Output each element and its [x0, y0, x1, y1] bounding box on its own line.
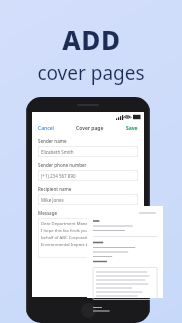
button[interactable]: (+1) 234 567 890: [38, 170, 138, 181]
staticText: Recipient name: [38, 186, 72, 192]
staticText: I hope this fax finds you well. I am wri…: [41, 228, 130, 234]
staticText: Mike Jones: [41, 197, 64, 203]
staticText: Cover page: [76, 125, 104, 132]
button[interactable]: Cover page preview: [87, 206, 163, 298]
staticText: ADD: [62, 22, 121, 57]
button[interactable]: Save: [125, 125, 139, 132]
staticText: cover pages: [37, 60, 145, 86]
staticText: Sender name: [38, 138, 67, 144]
button[interactable]: Dear Department Manager,: [38, 218, 138, 258]
staticText: Save: [126, 125, 138, 132]
button[interactable]: Mike Jones: [38, 194, 138, 205]
staticText: Environmental Impact Assessment report.: [41, 242, 124, 248]
staticText: (+1) 234 567 890: [41, 173, 76, 179]
staticText: Cancel: [38, 125, 54, 132]
staticText: Message: [38, 210, 58, 216]
button[interactable]: Cancel: [37, 125, 55, 132]
staticText: Dear Department Manager,: [41, 221, 95, 227]
staticText: Elizabeth Smith: [41, 149, 74, 155]
staticText: behalf of ABC Corporation regarding the: [41, 235, 121, 241]
staticText: Sender phone number: [38, 162, 87, 168]
button[interactable]: Elizabeth Smith: [38, 146, 138, 157]
